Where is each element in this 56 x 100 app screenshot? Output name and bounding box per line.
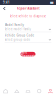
staticText: Vehicle Group Code	[5, 34, 35, 37]
button[interactable]: Vehicles	[11, 86, 22, 100]
button[interactable]: Home	[0, 86, 11, 100]
button[interactable]: Model Family	[5, 27, 51, 32]
staticText: Select model family	[5, 27, 31, 31]
button[interactable]: Back	[0, 5, 9, 12]
staticText: Model Family	[5, 23, 24, 27]
button[interactable]: Diagnostics	[22, 86, 34, 100]
staticText: 9:41	[3, 1, 10, 4]
button[interactable]: Vehicle Group Code	[5, 37, 51, 42]
staticText: Start Diagnosis	[21, 51, 35, 58]
button[interactable]: Parts	[34, 86, 45, 100]
button[interactable]: Profile	[45, 86, 56, 100]
staticText: Select vehicle to diagnose	[9, 14, 46, 18]
staticText: Repair Assistant	[16, 7, 39, 10]
staticText: ▮▮▮	[50, 1, 53, 4]
button[interactable]: Start Diagnosis	[20, 52, 35, 56]
staticText: Select group code	[5, 38, 31, 41]
